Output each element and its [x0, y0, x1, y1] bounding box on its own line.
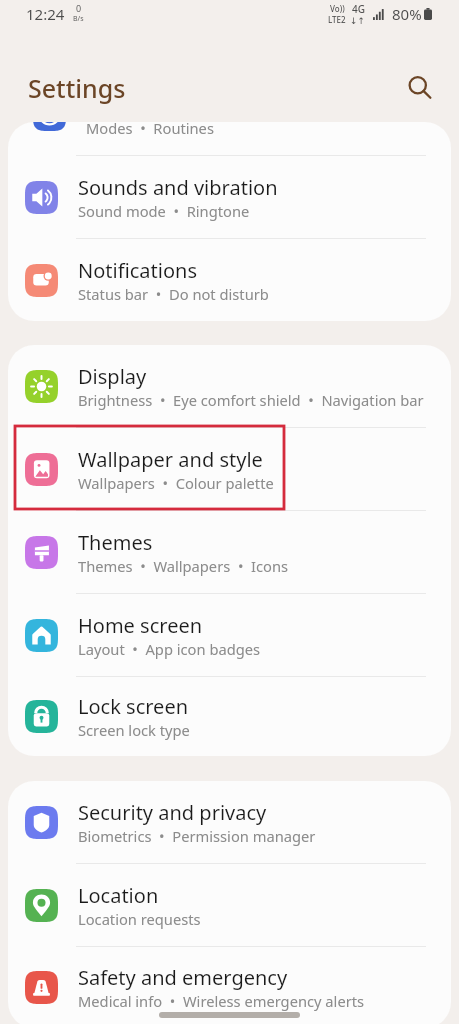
staticText: Safety and emergency	[78, 964, 288, 991]
staticText: Status bar • Do not disturb	[78, 284, 269, 304]
staticText: Vo))	[330, 3, 345, 14]
button[interactable]: Safety and emergency	[8, 947, 451, 1024]
staticText: Wallpapers • Colour palette	[78, 473, 274, 493]
button[interactable]: Security and privacy	[8, 781, 451, 863]
staticText: Medical info • Wireless emergency alerts	[78, 991, 365, 1011]
staticText: 12:24	[26, 4, 65, 24]
button[interactable]: Wallpaper and style	[8, 428, 451, 510]
staticText: Settings	[28, 71, 126, 105]
button[interactable]: Notifications	[8, 239, 451, 321]
button[interactable]: Lock screen	[8, 677, 451, 756]
staticText: Notifications	[78, 257, 197, 284]
button[interactable]: Home screen	[8, 594, 451, 676]
staticText: ↓↑	[350, 16, 366, 26]
staticText: Sound mode • Ringtone	[78, 201, 250, 221]
button[interactable]: Display	[8, 345, 451, 427]
staticText: LTE2	[328, 14, 346, 25]
staticText: Lock screen	[78, 693, 189, 720]
button[interactable]: Location	[8, 864, 451, 946]
staticText: Wallpaper and style	[78, 446, 263, 473]
staticText: Brightness • Eye comfort shield • Naviga…	[78, 390, 424, 410]
staticText: Themes • Wallpapers • Icons	[78, 556, 289, 576]
staticText: Home screen	[78, 612, 203, 639]
button[interactable]: Sounds and vibration	[8, 156, 451, 238]
button[interactable]: Search	[396, 64, 444, 112]
button[interactable]: Themes	[8, 511, 451, 593]
staticText: Display	[78, 363, 147, 390]
staticText: Location requests	[78, 909, 201, 929]
staticText: Layout • App icon badges	[78, 639, 261, 659]
staticText: 80%	[392, 4, 422, 24]
staticText: 0	[76, 2, 82, 14]
staticText: Biometrics • Permission manager	[78, 826, 316, 846]
staticText: Location	[78, 882, 159, 909]
button[interactable]: Modes • Routines	[8, 122, 451, 155]
staticText: Modes • Routines	[86, 122, 214, 138]
staticText: Themes	[78, 529, 153, 556]
staticText: Security and privacy	[78, 799, 267, 826]
staticText: Sounds and vibration	[78, 174, 278, 201]
staticText: 4G	[352, 2, 365, 16]
staticText: Screen lock type	[78, 720, 190, 740]
staticText: B/s	[73, 14, 84, 24]
